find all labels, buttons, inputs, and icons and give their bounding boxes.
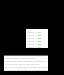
button[interactable]: Lorem ipsum dolor sit amet consectetur a… <box>4 55 48 71</box>
staticText: 1.20 <box>36 33 41 36</box>
staticText: 1.20 <box>36 45 41 48</box>
staticText: Name <box>27 42 34 45</box>
staticText: Name <box>27 45 34 48</box>
staticText: Ut enim ad minim veniam quis nostrud exe… <box>5 62 48 65</box>
staticText: Excepteur sint occaecat cupidatat non pr… <box>5 68 48 71</box>
button[interactable]: Name <box>26 29 48 48</box>
staticText: Lorem ipsum dolor sit amet consectetur a… <box>5 56 48 59</box>
staticText: 1.20 <box>36 30 41 33</box>
staticText: Name <box>27 33 34 36</box>
staticText: Duis aute irure dolor in reprehenderit i… <box>5 65 48 68</box>
staticText: 1.20 <box>36 39 41 42</box>
staticText: 1.20 <box>36 36 41 39</box>
staticText: 1.20 <box>36 42 41 45</box>
staticText: Name <box>27 39 34 42</box>
staticText: Name <box>27 36 34 39</box>
staticText: Name <box>27 30 34 33</box>
staticText: Sed do eiusmod tempor incididunt ut labo… <box>5 59 48 62</box>
